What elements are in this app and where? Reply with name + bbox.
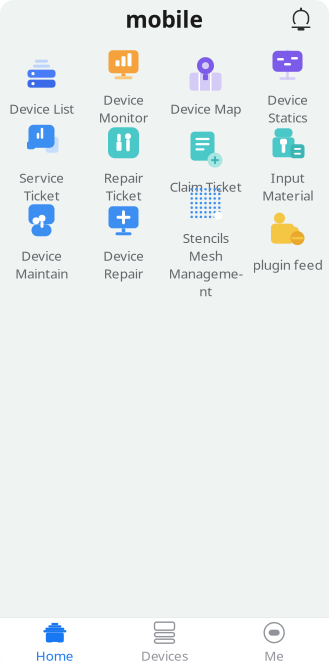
button[interactable]: Home xyxy=(0,616,110,668)
staticText: Me xyxy=(264,647,284,664)
button[interactable]: Device Repair xyxy=(82,204,164,280)
staticText: Devices xyxy=(141,647,188,664)
button[interactable]: plugin feed xyxy=(246,204,328,280)
staticText: Device Maintain xyxy=(15,247,68,282)
button[interactable]: Stencils Mesh Management xyxy=(164,204,246,280)
staticText: plugin feed xyxy=(252,256,322,273)
staticText: mobile xyxy=(125,4,203,34)
button[interactable]: Input Material xyxy=(246,126,328,202)
button[interactable]: Device Map xyxy=(164,48,246,124)
staticText: Device Repair xyxy=(103,247,144,282)
staticText: Service Ticket xyxy=(19,169,64,204)
button[interactable]: Repair Ticket xyxy=(82,126,164,202)
button[interactable]: Device List xyxy=(0,48,82,124)
staticText: Device Map xyxy=(170,100,241,117)
button[interactable]: Device Statics xyxy=(246,48,328,124)
button[interactable]: Claim Ticket xyxy=(164,126,246,202)
staticText: Device Statics xyxy=(267,91,308,126)
button[interactable]: Device Monitor xyxy=(82,48,164,124)
staticText: Stencils Mesh Management xyxy=(168,229,242,300)
button[interactable]: Service Ticket xyxy=(0,126,82,202)
button[interactable]: Notifications xyxy=(287,5,329,33)
staticText: Device List xyxy=(9,100,74,117)
staticText: Home xyxy=(36,647,74,664)
staticText: Claim Ticket xyxy=(169,178,241,195)
button[interactable]: Devices xyxy=(110,616,219,668)
button[interactable]: Device Maintain xyxy=(0,204,82,280)
staticText: Repair Ticket xyxy=(103,169,143,204)
button[interactable]: Me xyxy=(219,616,329,668)
staticText: Input Material xyxy=(262,169,313,204)
staticText: Device Monitor xyxy=(98,91,148,126)
